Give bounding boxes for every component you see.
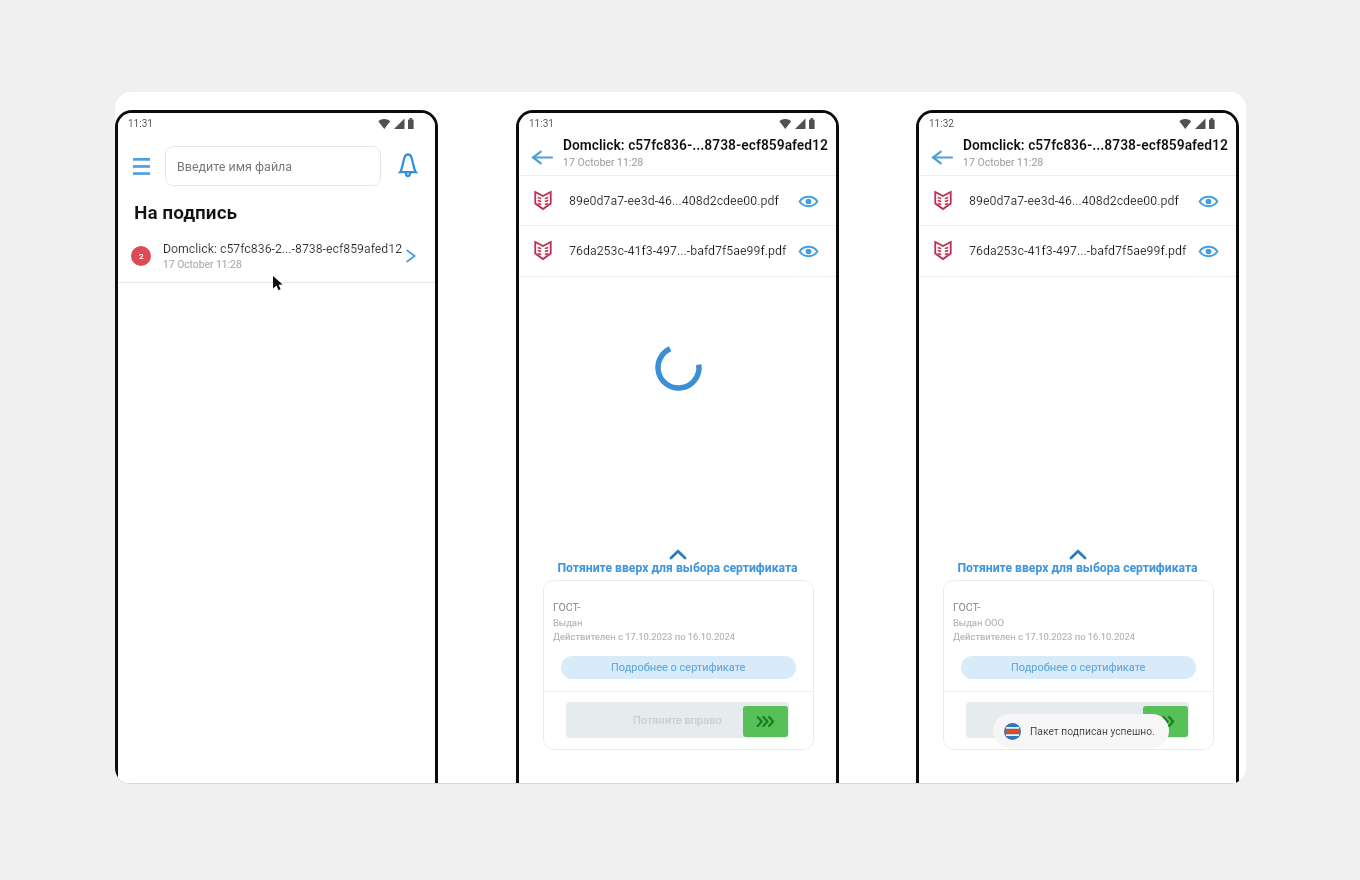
staticText: 17 October 11:28 [963, 156, 1044, 168]
button[interactable]: View document [1195, 188, 1221, 214]
staticText: Выдан ООО [953, 617, 1005, 628]
staticText: Подробнее о сертификате [611, 661, 746, 674]
button[interactable]: Пакет подписан успешно. [993, 714, 1169, 748]
staticText: Действителен с 17.10.2023 по 16.10.2024 [953, 631, 1135, 642]
staticText: 89e0d7a7-ee3d-46...408d2cdee00.pdf [569, 193, 795, 208]
button[interactable]: 89e0d7a7-ee3d-46...408d2cdee00.pdf [919, 176, 1236, 225]
staticText: Подробнее о сертификате [1011, 661, 1146, 674]
button[interactable]: Потяните вправо [966, 702, 1189, 738]
button[interactable]: Back [925, 140, 959, 174]
button[interactable]: View document [795, 238, 821, 264]
staticText: Потяните вверх для выбора сертификата [519, 561, 836, 575]
staticText: 76da253c-41f3-497...-bafd7f5ae99f.pdf [569, 243, 795, 258]
button[interactable]: View document [1195, 238, 1221, 264]
staticText: Domclick: c57fc836-...8738-ecf859afed12 [963, 137, 1228, 153]
staticText: 2 [139, 252, 144, 261]
staticText: Введите имя файла [177, 159, 293, 174]
staticText: Domclick: c57fc836-...8738-ecf859afed12 [563, 137, 828, 153]
staticText: 17 October 11:28 [563, 156, 644, 168]
button[interactable]: Потяните вправо [566, 702, 789, 738]
button[interactable]: Введите имя файла [165, 146, 381, 186]
button[interactable]: Slide right to sign [1143, 706, 1188, 737]
staticText: ГОСТ- [953, 601, 981, 613]
button[interactable]: Slide right to sign [743, 706, 788, 737]
button[interactable]: Подробнее о сертификате [961, 656, 1196, 679]
staticText: Потяните вверх для выбора сертификата [919, 561, 1236, 575]
button[interactable]: Menu [125, 150, 157, 182]
staticText: 11:32 [929, 118, 954, 130]
staticText: ГОСТ- [553, 601, 581, 613]
staticText: Действителен с 17.10.2023 по 16.10.2024 [553, 631, 735, 642]
staticText: Пакет подписан успешно. [1030, 725, 1155, 737]
button[interactable]: Notifications [392, 149, 424, 181]
staticText: Потяните вправо [633, 714, 722, 727]
button[interactable]: Back [525, 140, 559, 174]
button[interactable]: 2 [118, 232, 435, 279]
staticText: 11:31 [128, 118, 153, 130]
button[interactable]: 76da253c-41f3-497...-bafd7f5ae99f.pdf [919, 226, 1236, 275]
button[interactable]: 89e0d7a7-ee3d-46...408d2cdee00.pdf [519, 176, 836, 225]
button[interactable]: Подробнее о сертификате [561, 656, 796, 679]
staticText: 11:31 [529, 118, 554, 130]
button[interactable]: 76da253c-41f3-497...-bafd7f5ae99f.pdf [519, 226, 836, 275]
staticText: На подпись [134, 201, 238, 223]
staticText: 89e0d7a7-ee3d-46...408d2cdee00.pdf [969, 193, 1195, 208]
button[interactable]: View document [795, 188, 821, 214]
staticText: Domclick: c57fc836-2...-8738-ecf859afed1… [163, 242, 402, 256]
staticText: 76da253c-41f3-497...-bafd7f5ae99f.pdf [969, 243, 1195, 258]
staticText: Выдан [553, 617, 583, 628]
staticText: 17 October 11:28 [163, 258, 242, 270]
